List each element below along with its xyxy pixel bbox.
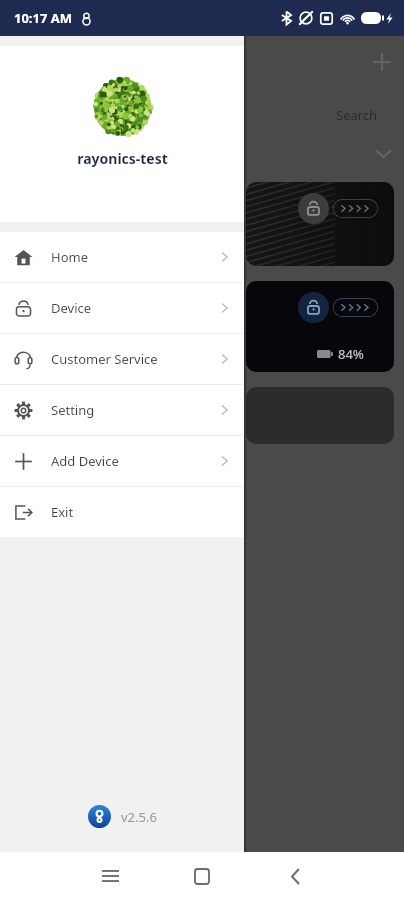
button[interactable]: Home xyxy=(0,232,244,282)
button[interactable]: Lock xyxy=(246,281,394,372)
staticText: Exit xyxy=(51,503,74,521)
staticText: Setting xyxy=(51,401,95,419)
button[interactable]: Lock xyxy=(298,193,329,224)
staticText: v2.5.6 xyxy=(121,808,157,826)
button[interactable]: Add Device xyxy=(0,436,244,486)
button[interactable]: Lock xyxy=(298,292,329,323)
staticText: 84% xyxy=(338,345,364,363)
button[interactable]: Expand xyxy=(369,139,397,167)
button[interactable]: Customer Service xyxy=(0,334,244,384)
button[interactable]: Lock xyxy=(246,182,394,266)
button[interactable]: Add device xyxy=(366,46,397,77)
button[interactable]: Search xyxy=(330,102,384,128)
staticText: Search xyxy=(336,106,378,124)
staticText: Add Device xyxy=(51,452,119,470)
button[interactable]: Home xyxy=(184,852,220,900)
staticText: Customer Service xyxy=(51,350,158,368)
button[interactable]: Setting xyxy=(0,385,244,435)
button[interactable]: Recent apps xyxy=(92,852,128,900)
button[interactable]: Back xyxy=(277,852,313,900)
button[interactable] xyxy=(333,199,378,218)
button[interactable] xyxy=(333,298,378,317)
staticText: Device xyxy=(51,299,92,317)
staticText: Home xyxy=(51,248,88,266)
button[interactable]: Device xyxy=(0,283,244,333)
button[interactable]: Exit xyxy=(0,487,244,537)
staticText: 10:17 AM xyxy=(14,9,73,27)
staticText: rayonics-test xyxy=(77,149,168,168)
button[interactable]: rayonics-test xyxy=(0,46,244,222)
